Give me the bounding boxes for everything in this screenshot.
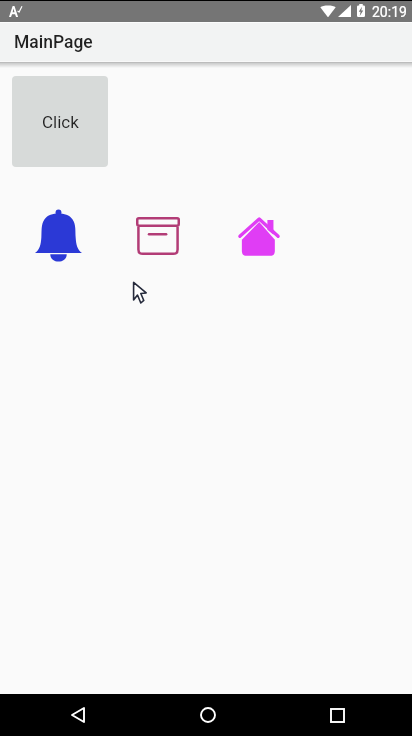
button[interactable]: Notifications [35, 209, 82, 263]
button[interactable]: Recent apps [313, 694, 361, 736]
button[interactable]: Back [54, 694, 102, 736]
staticText: 20:19 [372, 4, 407, 20]
button[interactable]: Archive [136, 217, 180, 255]
staticText: MainPage [14, 32, 93, 53]
button[interactable]: Home [238, 217, 280, 256]
staticText: Click [42, 112, 79, 132]
button[interactable]: Click [12, 76, 108, 167]
button[interactable]: Home [184, 694, 232, 736]
